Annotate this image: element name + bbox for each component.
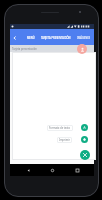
staticText: TARJETA PRESENTACIÓN — [41, 36, 71, 39]
button[interactable]: MENÚ — [24, 29, 38, 45]
staticText: Formato de texto — [49, 126, 71, 130]
button[interactable]: Close actions menu — [80, 150, 90, 160]
button[interactable]: Formato de texto — [47, 125, 73, 131]
button[interactable]: Recent apps — [70, 165, 84, 176]
button[interactable]: Text format — [81, 124, 88, 131]
button[interactable]: IMÁGENES — [74, 29, 94, 45]
button[interactable]: Account — [77, 44, 87, 54]
button[interactable]: Back — [10, 30, 20, 45]
staticText: Tarjeta presentación — [12, 47, 37, 51]
button[interactable]: TARJETA PRESENTACIÓN — [38, 29, 74, 45]
button[interactable]: Imprimir — [57, 137, 72, 143]
button[interactable]: Print — [81, 136, 88, 143]
button[interactable]: Back — [21, 165, 35, 176]
staticText: Imprimir — [59, 138, 70, 142]
staticText: IMÁGENES — [77, 36, 91, 39]
button[interactable]: Home — [45, 165, 59, 176]
staticText: MENÚ — [27, 36, 35, 39]
